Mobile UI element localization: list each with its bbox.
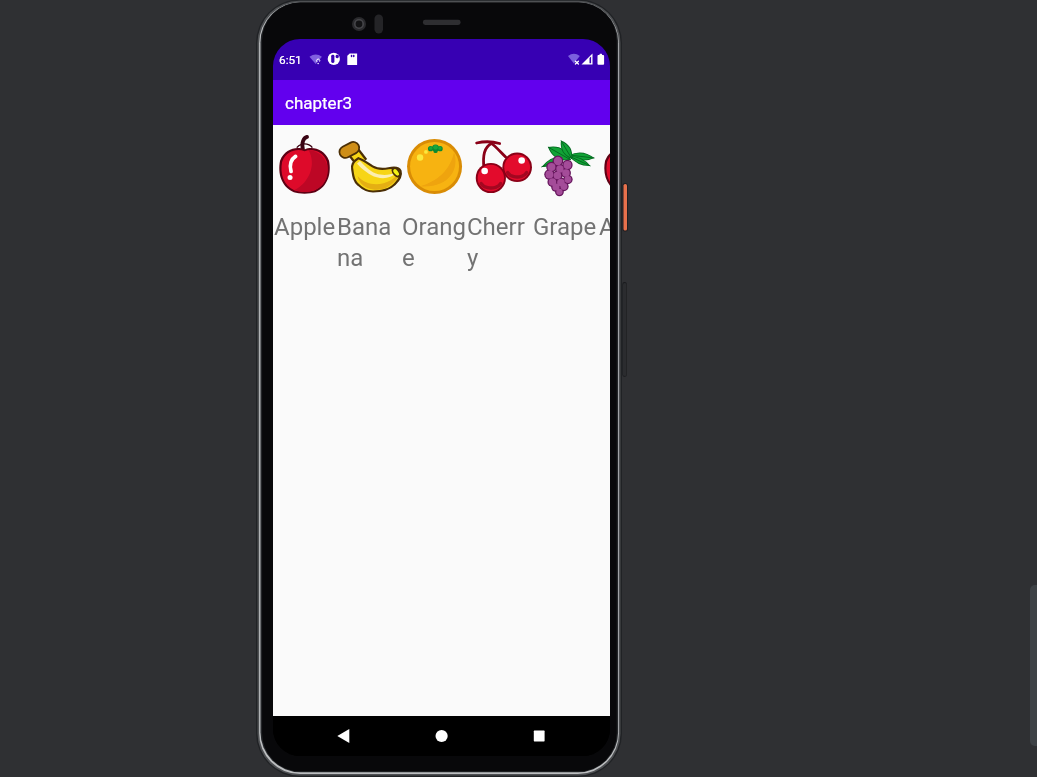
staticText: Grape [533, 213, 597, 241]
button[interactable]: Back [320, 716, 370, 756]
button[interactable]: Grape [532, 125, 597, 241]
button[interactable]: Apple [597, 125, 610, 241]
button[interactable]: Home [417, 716, 467, 756]
staticText: Apple [274, 213, 336, 241]
button[interactable]: Orange [402, 125, 467, 272]
staticText: Banana [337, 213, 402, 272]
button[interactable]: Banana [337, 125, 402, 272]
button[interactable]: Apple [273, 125, 337, 241]
staticText: 6:51 [279, 53, 302, 67]
staticText: Apple [599, 213, 610, 241]
button[interactable]: Recent apps [513, 716, 563, 756]
staticText: Cherry [467, 213, 532, 272]
staticText: Orange [402, 213, 467, 272]
staticText: chapter3 [285, 93, 352, 113]
button[interactable]: Cherry [467, 125, 532, 272]
